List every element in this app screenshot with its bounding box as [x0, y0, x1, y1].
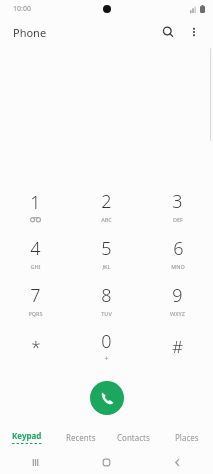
staticText: Recents [66, 432, 96, 443]
button[interactable]: Contacts [107, 424, 160, 450]
staticText: * [31, 335, 41, 358]
button[interactable]: # [142, 323, 213, 370]
button[interactable]: Call [90, 381, 124, 415]
button[interactable]: 2 [71, 182, 142, 229]
button[interactable]: Home [71, 450, 142, 474]
staticText: JKL [102, 263, 111, 270]
button[interactable]: * [0, 323, 71, 370]
staticText: 1 [30, 190, 41, 215]
staticText: Keypad [12, 430, 42, 441]
staticText: Contacts [117, 432, 150, 443]
button[interactable]: Back [142, 450, 213, 474]
staticText: 9 [172, 283, 183, 308]
staticText: 10:00 [13, 4, 31, 14]
button[interactable]: Recent apps [0, 450, 71, 474]
staticText: 7 [30, 283, 41, 308]
staticText: 8 [101, 283, 112, 308]
button[interactable]: 4 [0, 229, 71, 276]
button[interactable]: Places [160, 424, 213, 450]
button[interactable]: Recents [54, 424, 107, 450]
button[interactable]: 6 [142, 229, 213, 276]
staticText: Phone [13, 25, 47, 40]
staticText: 0 [101, 329, 112, 354]
button[interactable]: 3 [142, 182, 213, 229]
staticText: 6 [173, 236, 184, 261]
staticText: 5 [101, 236, 112, 261]
staticText: WXYZ [170, 310, 185, 317]
staticText: 3 [172, 189, 183, 214]
button[interactable]: 8 [71, 276, 142, 323]
staticText: 2 [101, 189, 112, 214]
staticText: TUV [101, 310, 112, 317]
button[interactable]: 0 [71, 323, 142, 370]
button[interactable]: More options [181, 19, 207, 45]
button[interactable]: 9 [142, 276, 213, 323]
button[interactable]: Keypad [0, 424, 54, 450]
staticText: DEF [173, 216, 183, 223]
staticText: + [104, 354, 109, 364]
staticText: ABC [101, 216, 112, 223]
button[interactable]: 1 [0, 182, 71, 229]
staticText: MNO [171, 263, 185, 270]
button[interactable]: 5 [71, 229, 142, 276]
staticText: PQRS [28, 310, 43, 317]
staticText: 4 [30, 236, 41, 261]
staticText: # [172, 335, 183, 358]
button[interactable]: Search [155, 19, 181, 45]
staticText: Places [175, 432, 199, 443]
button[interactable]: 7 [0, 276, 71, 323]
staticText: GHI [30, 263, 41, 270]
